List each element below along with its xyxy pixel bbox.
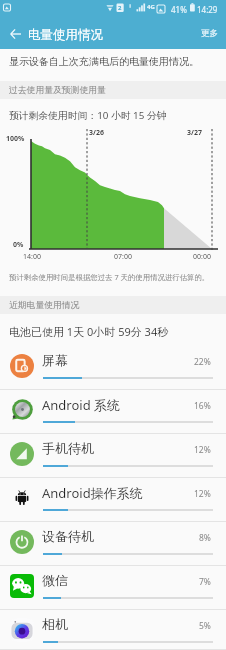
button[interactable]: 设备待机 [0, 522, 226, 566]
button[interactable]: Android 系统 [0, 390, 226, 434]
button[interactable]: 相机 [0, 610, 226, 650]
button[interactable]: 微信 [0, 566, 226, 610]
staticText: 12% [194, 444, 211, 456]
staticText: 电池已使用 1天 0小时 59分 34秒 [9, 324, 169, 339]
staticText: 近期电量使用情况 [9, 300, 80, 311]
staticText: 微信 [42, 572, 68, 588]
staticText: 3/26 [89, 128, 104, 138]
staticText: 过去使用量及预测使用量 [9, 85, 106, 96]
staticText: 16% [194, 400, 211, 412]
button[interactable]: Back [2, 18, 29, 49]
staticText: 8% [199, 532, 211, 544]
staticText: 7% [199, 576, 211, 588]
staticText: Android操作系统 [42, 484, 143, 502]
staticText: 更多 [201, 28, 218, 39]
staticText: 显示设备自上次充满电后的电量使用情况。 [9, 55, 199, 68]
staticText: 4G [147, 3, 155, 11]
staticText: 0% [13, 240, 24, 250]
button[interactable]: Android操作系统 [0, 478, 226, 522]
staticText: Android 系统 [42, 396, 121, 414]
button[interactable]: 屏幕 [0, 346, 226, 390]
staticText: 12% [194, 488, 211, 500]
button[interactable]: 手机待机 [0, 434, 226, 478]
staticText: 00:00 [193, 252, 211, 262]
staticText: 14:29 [197, 4, 218, 15]
staticText: 相机 [42, 616, 68, 632]
staticText: 22% [194, 356, 211, 368]
staticText: 3/27 [187, 128, 202, 138]
staticText: 2 [118, 4, 122, 12]
button[interactable]: 更多 [191, 20, 226, 47]
staticText: 屏幕 [42, 352, 68, 368]
staticText: 预计剩余使用时间是根据您过去 7 天的使用情况进行估算的。 [9, 272, 210, 282]
staticText: 预计剩余使用时间：10 小时 15 分钟 [9, 109, 167, 122]
staticText: 41% [171, 4, 187, 15]
staticText: 设备待机 [42, 528, 94, 544]
staticText: 电量使用情况 [28, 27, 103, 43]
staticText: 14:00 [23, 252, 41, 262]
staticText: 100% [6, 134, 25, 144]
staticText: 07:00 [114, 252, 132, 262]
staticText: 5% [199, 620, 211, 632]
staticText: 手机待机 [42, 440, 94, 456]
